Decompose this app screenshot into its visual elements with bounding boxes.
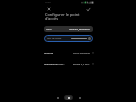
staticText: Mot de passe <box>47 37 62 40</box>
button[interactable]: Mot de passe <box>44 35 93 42</box>
button[interactable]: Sélectionner la b... <box>40 58 97 69</box>
button[interactable]: Back <box>53 93 62 102</box>
staticText: 12:01 <box>45 1 51 4</box>
staticText: Nom <box>46 28 52 31</box>
staticText: Bande 2,4 GHz <box>73 62 90 65</box>
button[interactable]: Save <box>85 6 91 12</box>
button[interactable]: Sécurité <box>40 47 97 58</box>
staticText: OnePlus_Broadcast <box>69 28 90 31</box>
button[interactable]: Recents <box>75 93 84 102</box>
staticText: Configurer le point d'accès <box>45 12 85 22</box>
staticText: Sécurité <box>44 51 54 54</box>
button[interactable]: Nom <box>44 26 93 32</box>
staticText: WPA2 Personal <box>73 51 90 54</box>
button[interactable]: Show password <box>88 37 91 40</box>
button[interactable]: Home <box>64 93 73 102</box>
staticText: Sélectionner la b... <box>44 62 65 65</box>
button[interactable]: Close <box>46 6 52 12</box>
